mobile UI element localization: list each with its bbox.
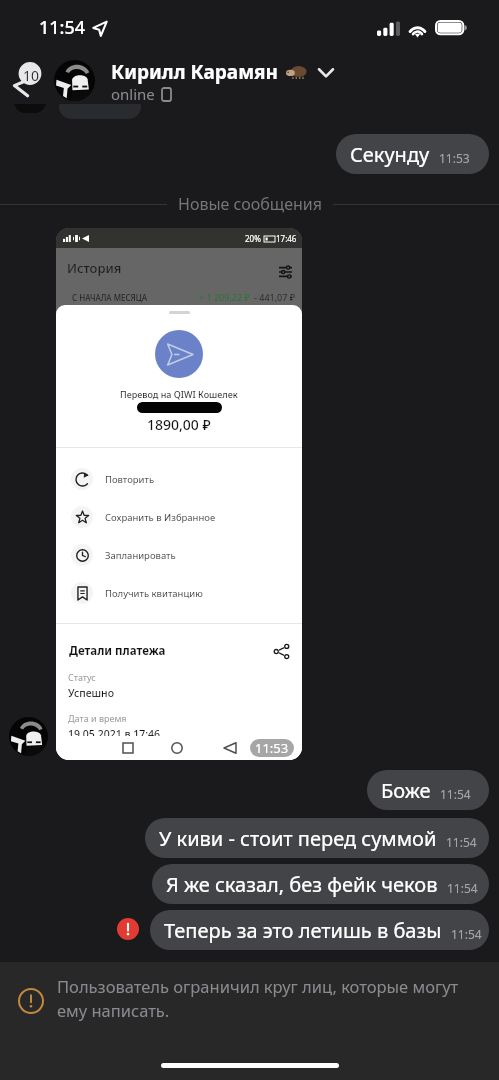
staticText: Секунду xyxy=(350,141,430,168)
button[interactable]: Боже xyxy=(367,770,489,810)
staticText: Дата и время xyxy=(68,712,127,724)
staticText: 11:54 xyxy=(440,786,471,802)
staticText: 17:46 xyxy=(276,233,297,244)
staticText: Детали платежа xyxy=(69,643,166,659)
staticText: 20% xyxy=(245,233,261,244)
button[interactable]: Back xyxy=(4,52,48,96)
staticText: 11:54 xyxy=(447,880,478,896)
staticText: - 441,07 ₽ xyxy=(254,291,295,303)
staticText: История xyxy=(67,259,122,277)
button[interactable]: Получить квитанцию xyxy=(71,574,302,612)
staticText: Теперь за это летишь в базы xyxy=(164,917,442,944)
button[interactable]: Пользователь ограничил круг лиц, которые… xyxy=(0,962,499,1080)
staticText: Пользователь ограничил круг лиц, которые… xyxy=(57,975,487,1022)
staticText: Я же сказал, без фейк чеков xyxy=(166,871,438,898)
button[interactable]: Запланировать xyxy=(71,536,302,574)
staticText: Кирилл Карамян xyxy=(111,59,279,85)
staticText: + 1 209,22 ₽ xyxy=(199,291,250,303)
staticText: Получить квитанцию xyxy=(105,587,203,600)
staticText: 11:53 xyxy=(255,739,289,757)
button[interactable]: Message not delivered xyxy=(117,918,139,940)
staticText: online xyxy=(111,84,155,104)
staticText: Боже xyxy=(381,777,431,804)
button[interactable]: Photo xyxy=(56,228,302,760)
button[interactable]: Сохранить в Избранное xyxy=(71,498,302,536)
staticText: 11:54 xyxy=(39,15,86,40)
staticText: Статус xyxy=(68,671,96,683)
button[interactable]: Повторить xyxy=(71,460,302,498)
staticText: 19.05.2021 в 17:46 xyxy=(68,727,161,741)
staticText: 1890,00 ₽ xyxy=(147,415,211,434)
staticText: 11:54 xyxy=(446,834,477,850)
staticText: 10 xyxy=(23,66,40,85)
staticText: 11:53 xyxy=(439,150,470,166)
staticText: У киви - стоит перед суммой xyxy=(159,825,437,852)
staticText: 11:54 xyxy=(451,926,482,942)
button[interactable]: У киви - стоит перед суммой xyxy=(145,818,489,858)
staticText: Новые сообщения xyxy=(178,193,322,215)
button[interactable] xyxy=(54,60,95,101)
staticText: Запланировать xyxy=(105,549,176,562)
staticText: Повторить xyxy=(105,473,155,486)
button[interactable]: Теперь за это летишь в базы xyxy=(150,910,489,950)
button[interactable]: Секунду xyxy=(336,134,489,174)
staticText: Успешно xyxy=(68,686,115,700)
staticText: Перевод на QIWI Кошелек xyxy=(120,388,238,400)
staticText: С НАЧАЛА МЕСЯЦА xyxy=(72,292,148,303)
button[interactable]: Я же сказал, без фейк чеков xyxy=(152,864,489,904)
button[interactable] xyxy=(155,330,203,378)
staticText: Сохранить в Избранное xyxy=(105,511,216,524)
